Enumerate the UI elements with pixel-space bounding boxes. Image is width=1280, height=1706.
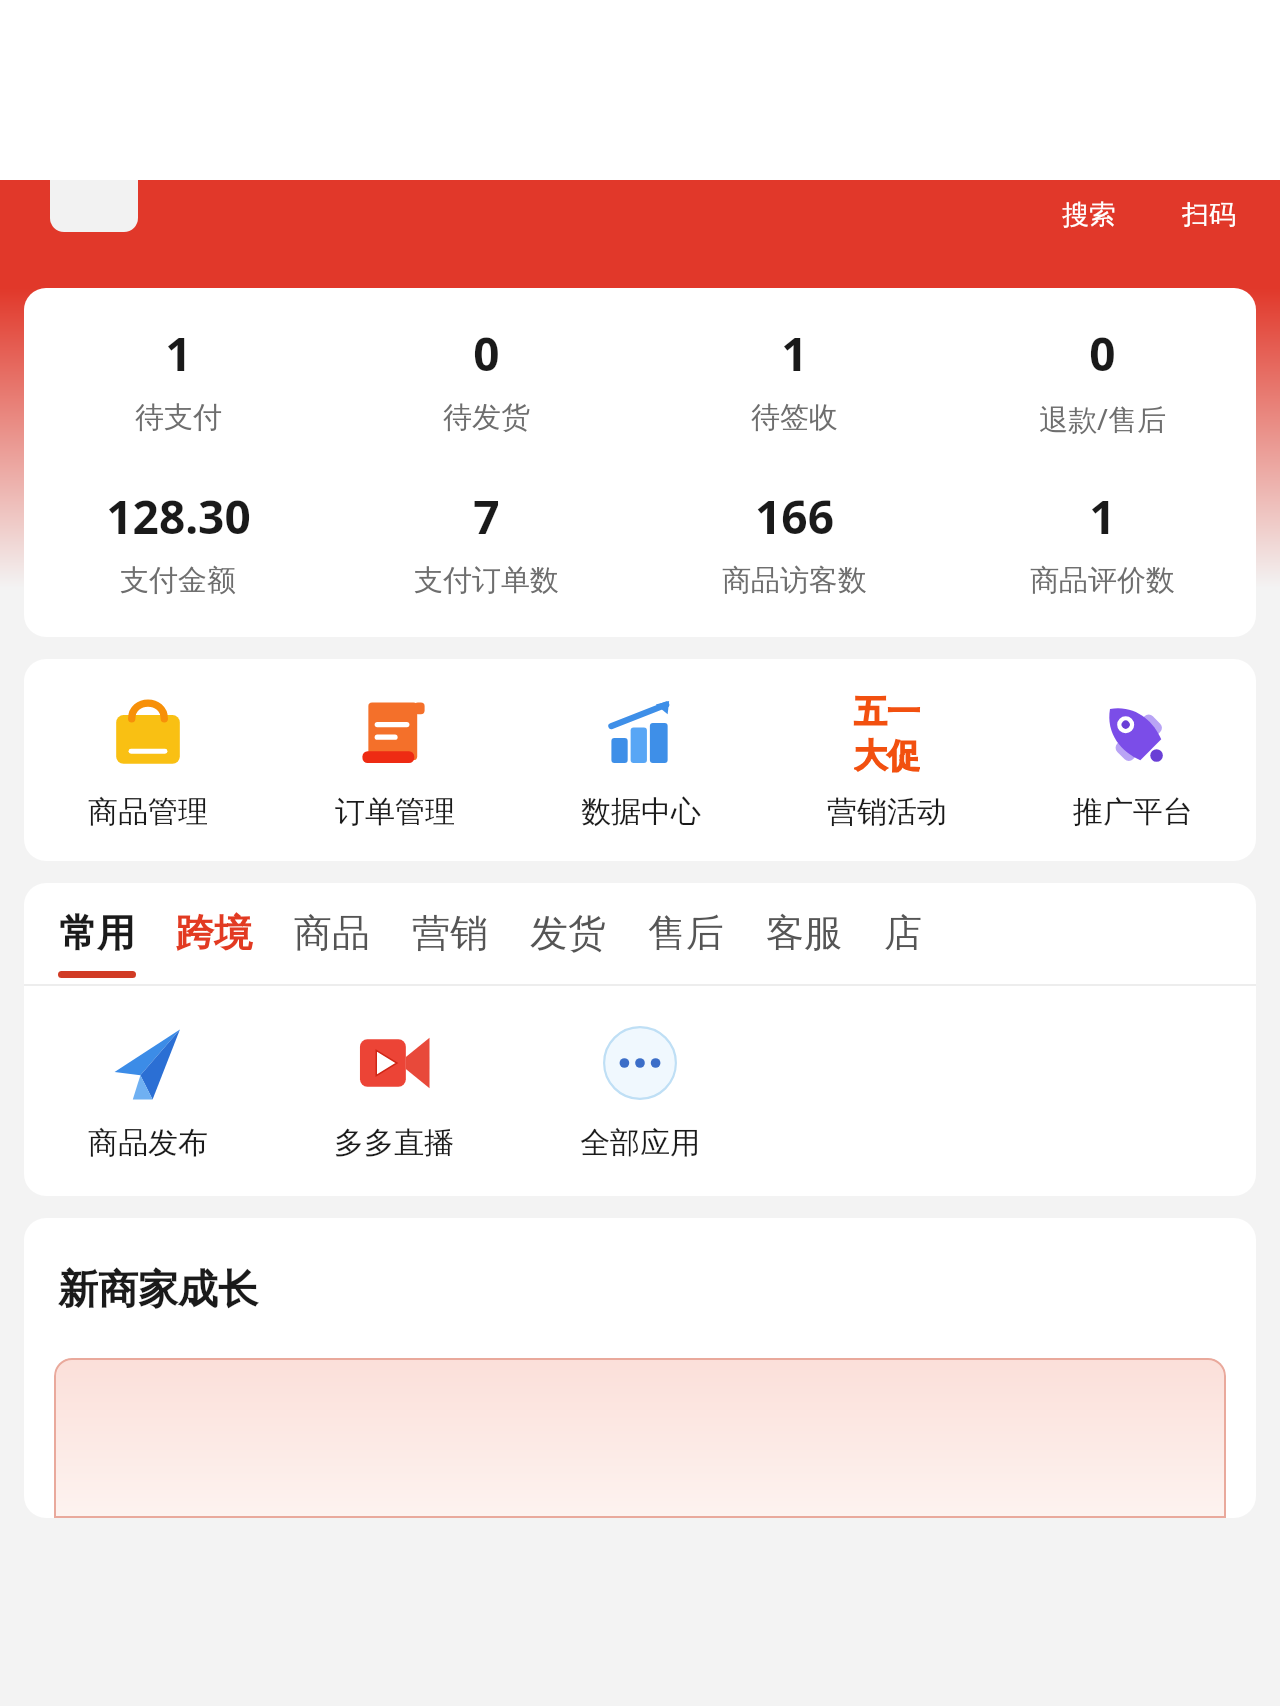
staticText: 订单管理 xyxy=(335,793,455,831)
staticText: 扫码 xyxy=(1182,198,1236,232)
button[interactable]: 商品 xyxy=(294,909,412,978)
staticText: 退款/售后 xyxy=(1039,399,1166,439)
staticText: 支付订单数 xyxy=(414,562,559,599)
button[interactable]: 全部应用 xyxy=(517,1020,763,1162)
staticText: 售后 xyxy=(648,909,724,957)
staticText: 客服 xyxy=(766,909,842,957)
staticText: 搜索 xyxy=(1062,198,1116,232)
button[interactable]: 0 xyxy=(948,322,1256,439)
staticText: 营销 xyxy=(412,909,488,957)
staticText: 跨境 xyxy=(176,909,252,957)
staticText: 多多直播 xyxy=(334,1124,454,1162)
button[interactable]: 0 xyxy=(332,322,640,436)
button[interactable]: 1 xyxy=(948,485,1256,599)
staticText: 待签收 xyxy=(751,399,838,436)
button[interactable]: 扫码 xyxy=(1178,194,1240,236)
button[interactable]: 营销 xyxy=(412,909,530,978)
staticText: 1 xyxy=(781,322,808,385)
staticText: 常用 xyxy=(59,909,135,957)
staticText: 商品发布 xyxy=(88,1124,208,1162)
button[interactable]: 数据中心 xyxy=(518,689,764,831)
button[interactable]: 订单管理 xyxy=(271,689,518,831)
button[interactable]: 166 xyxy=(640,485,948,599)
staticText: 发货 xyxy=(530,909,606,957)
staticText: 1 xyxy=(165,322,192,385)
button[interactable]: 发货 xyxy=(530,909,648,978)
staticText: 全部应用 xyxy=(580,1124,700,1162)
button[interactable]: 客服 xyxy=(766,909,884,978)
button[interactable]: Shop avatar xyxy=(50,180,138,232)
staticText: 五一 xyxy=(854,691,920,733)
staticText: 0 xyxy=(1089,322,1116,385)
button[interactable]: 商品管理 xyxy=(24,689,271,831)
button[interactable]: 128.30 xyxy=(24,485,332,599)
staticText: 商品评价数 xyxy=(1030,562,1175,599)
button[interactable]: 售后 xyxy=(648,909,766,978)
button[interactable] xyxy=(54,1358,1226,1518)
staticText: 店 xyxy=(884,909,922,957)
staticText: 新商家成长 xyxy=(58,1264,258,1314)
button[interactable]: 五一 xyxy=(764,689,1010,831)
button[interactable]: 跨境 xyxy=(176,909,294,978)
button[interactable]: 多多直播 xyxy=(271,1020,517,1162)
staticText: 支付金额 xyxy=(120,562,236,599)
button[interactable]: 店 xyxy=(884,909,964,978)
staticText: 1 xyxy=(1089,485,1116,548)
button[interactable]: 7 xyxy=(332,485,640,599)
button[interactable]: 商品发布 xyxy=(24,1020,271,1162)
staticText: 大促 xyxy=(854,735,920,773)
staticText: 营销活动 xyxy=(827,793,947,831)
staticText: 128.30 xyxy=(106,485,251,548)
staticText: 166 xyxy=(755,485,834,548)
staticText: 推广平台 xyxy=(1073,793,1193,831)
staticText: 商品访客数 xyxy=(722,562,867,599)
staticText: 商品管理 xyxy=(88,793,208,831)
staticText: 待支付 xyxy=(135,399,222,436)
button[interactable]: 常用 xyxy=(58,909,176,978)
staticText: 待发货 xyxy=(443,399,530,436)
staticText: 7 xyxy=(473,485,500,548)
button[interactable]: 推广平台 xyxy=(1010,689,1256,831)
button[interactable]: 搜索 xyxy=(1058,194,1120,236)
staticText: 0 xyxy=(473,322,500,385)
staticText: 数据中心 xyxy=(581,793,701,831)
button[interactable]: 1 xyxy=(24,322,332,436)
button[interactable]: 1 xyxy=(640,322,948,436)
staticText: 商品 xyxy=(294,909,370,957)
